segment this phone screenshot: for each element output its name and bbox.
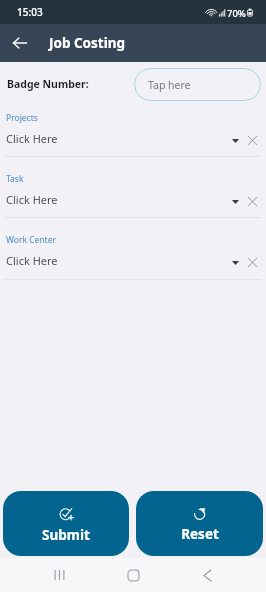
staticText: Work Center — [6, 234, 56, 246]
button[interactable]: Clear — [244, 254, 261, 271]
staticText: Click Here — [6, 192, 58, 207]
staticText: 15:03 — [17, 5, 43, 19]
staticText: Click Here — [6, 131, 58, 146]
staticText: Job Costing — [49, 34, 126, 52]
button[interactable]: Back — [0, 24, 38, 62]
staticText: Click Here — [6, 253, 58, 268]
other: Open dropdown — [227, 193, 244, 210]
button[interactable]: Home — [113, 558, 153, 592]
button[interactable]: Back — [187, 558, 227, 592]
staticText: 70% — [227, 7, 246, 20]
other: Open dropdown — [227, 132, 244, 149]
button[interactable]: Tap here — [134, 68, 261, 101]
staticText: Tap here — [148, 78, 191, 92]
button[interactable]: Task — [0, 157, 266, 218]
button[interactable]: Reset — [136, 491, 263, 556]
staticText: Reset — [181, 525, 219, 543]
button[interactable]: Work Center — [0, 218, 266, 280]
staticText: Task — [6, 173, 24, 185]
other: Open dropdown — [227, 254, 244, 271]
button[interactable]: Submit — [3, 491, 129, 556]
staticText: Projects — [6, 112, 38, 124]
button[interactable]: Recents — [39, 558, 79, 592]
staticText: Badge Number: — [7, 77, 89, 91]
staticText: Submit — [42, 526, 90, 544]
button[interactable]: Clear — [244, 132, 261, 149]
button[interactable]: Clear — [244, 193, 261, 210]
button[interactable]: Projects — [0, 104, 266, 157]
